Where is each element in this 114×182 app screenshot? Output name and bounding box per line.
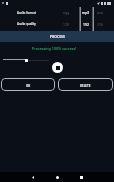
staticText: 256 [97,22,103,27]
staticText: Audio quality [17,22,36,26]
button[interactable]: 192 [79,19,92,29]
button[interactable]: Playback position [25,59,28,62]
button[interactable]: Back [28,172,38,182]
button[interactable]: ogg [59,7,73,17]
staticText: OK [26,84,31,88]
staticText: mp3 [82,10,90,15]
staticText: PROCESS [50,34,65,39]
button[interactable]: DELETE [58,78,113,91]
button[interactable]: wav [93,7,107,17]
button[interactable]: 128 [59,19,73,29]
button[interactable]: PROCESS [0,31,114,42]
staticText: DELETE [80,84,91,88]
button[interactable]: Recents [76,172,86,182]
button[interactable]: mp3 [79,7,92,17]
button[interactable]: OK [1,78,55,91]
staticText: wav [97,10,104,15]
button[interactable]: Stop [52,62,63,73]
staticText: Audio format [17,11,37,15]
button[interactable]: Home [52,172,62,182]
staticText: ogg [63,10,70,15]
staticText: 128 [63,22,69,27]
staticText: Processing 100% success! [32,46,77,51]
button[interactable]: 256 [93,19,107,29]
staticText: 192 [83,22,89,27]
